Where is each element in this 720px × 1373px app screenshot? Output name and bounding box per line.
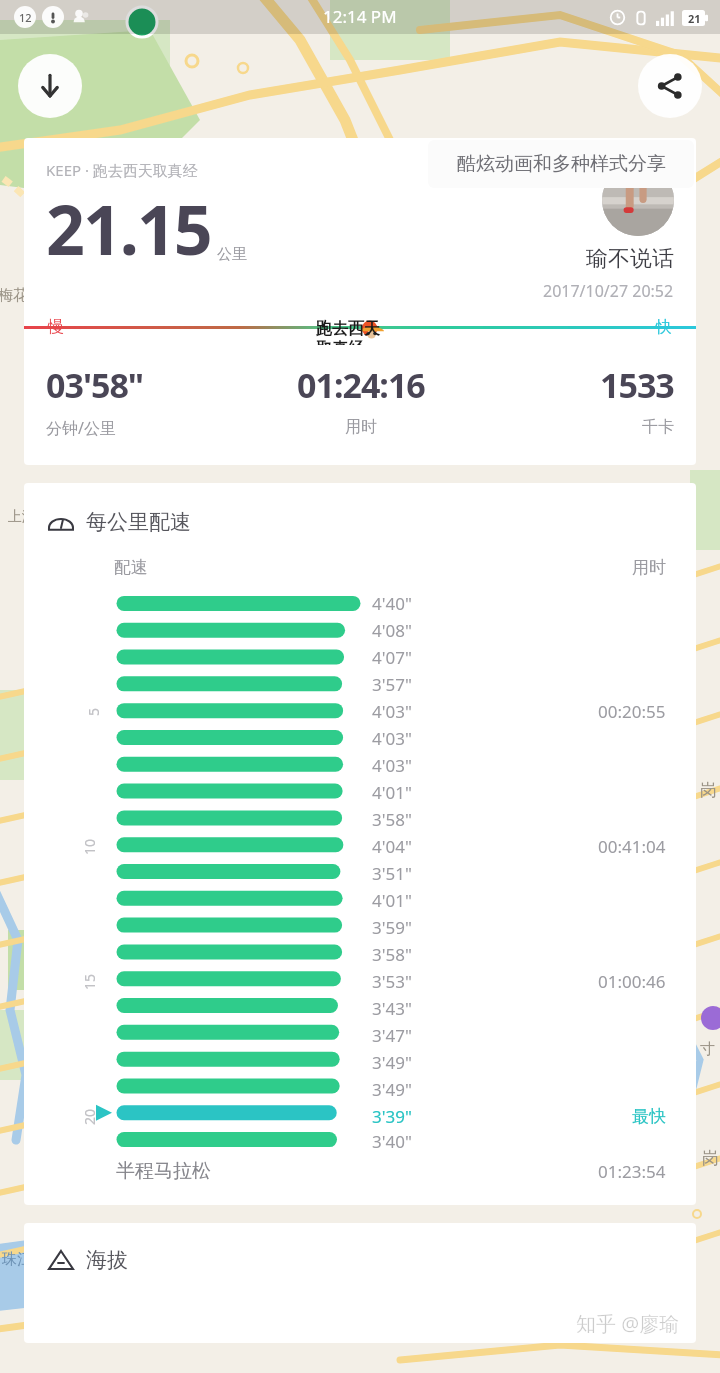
staticText: 4'01" [372,889,412,912]
staticText: 4'40" [372,592,412,615]
staticText: 4'01" [372,781,412,804]
staticText: 4'03" [372,700,412,723]
staticText: 千卡 [642,417,674,437]
staticText: 半程马拉松 [116,1159,211,1183]
staticText: 岗 [700,780,717,801]
staticText: 01:24:16 [297,362,425,408]
staticText: 海拔 [86,1247,128,1273]
staticText: 瑜不说话 [586,245,674,273]
staticText: 寸 [700,1040,715,1059]
staticText: 梅花 [0,286,28,305]
staticText: 珠江 [2,1250,32,1269]
staticText: 3'59" [372,916,412,939]
staticText: 4'07" [372,646,412,669]
staticText: 分钟/公里 [46,417,116,439]
staticText: 酷炫动画和多种样式分享 [457,152,666,176]
staticText: 公里 [217,245,247,264]
staticText: 01:00:46 [598,970,666,993]
staticText: 3'39" [372,1105,412,1128]
staticText: 1533 [600,362,674,408]
staticText: 3'58" [372,808,412,831]
staticText: 3'47" [372,1024,412,1047]
staticText: 21.15 [46,182,211,275]
staticText: 用时 [345,417,377,437]
staticText: 00:41:04 [598,835,666,858]
button[interactable]: 酷炫动画和多种样式分享 [428,140,694,188]
staticText: 4'08" [372,619,412,642]
staticText: 配速 [114,557,148,578]
staticText: KEEP · 跑去西天取真经 [46,160,198,180]
staticText: 3'43" [372,997,412,1020]
staticText: 用时 [632,557,666,578]
staticText: 3'49" [372,1078,412,1101]
staticText: 21 [688,11,701,26]
staticText: 00:20:55 [598,700,666,723]
staticText: 4'03" [372,754,412,777]
staticText: 5 [84,707,103,716]
staticText: 上渡 [8,508,36,526]
staticText: 3'40" [372,1130,412,1153]
staticText: 15 [80,973,99,990]
staticText: 跑去西天 [316,319,380,339]
staticText: 慢 [48,317,64,337]
button[interactable]: Download [18,54,82,118]
staticText: 2017/10/27 20:52 [543,280,674,302]
staticText: 岗 [702,1148,719,1169]
staticText: 20 [80,1108,99,1125]
staticText: 3'51" [372,862,412,885]
staticText: 3'53" [372,970,412,993]
staticText: 4'03" [372,727,412,750]
staticText: 3'58" [372,943,412,966]
staticText: 3'49" [372,1051,412,1074]
staticText: 知乎 @廖瑜 [576,1310,680,1337]
staticText: 快 [656,317,672,337]
staticText: 10 [80,838,99,855]
staticText: 每公里配速 [86,509,191,535]
staticText: 4'04" [372,835,412,858]
staticText: 3'57" [372,673,412,696]
staticText: 最快 [632,1106,666,1127]
staticText: 取真经 [316,339,364,345]
staticText: 01:23:54 [598,1160,666,1183]
button[interactable]: Share [638,54,702,118]
staticText: 12:14 PM [323,5,397,28]
staticText: 12 [19,10,32,25]
staticText: 03'58" [46,362,144,408]
